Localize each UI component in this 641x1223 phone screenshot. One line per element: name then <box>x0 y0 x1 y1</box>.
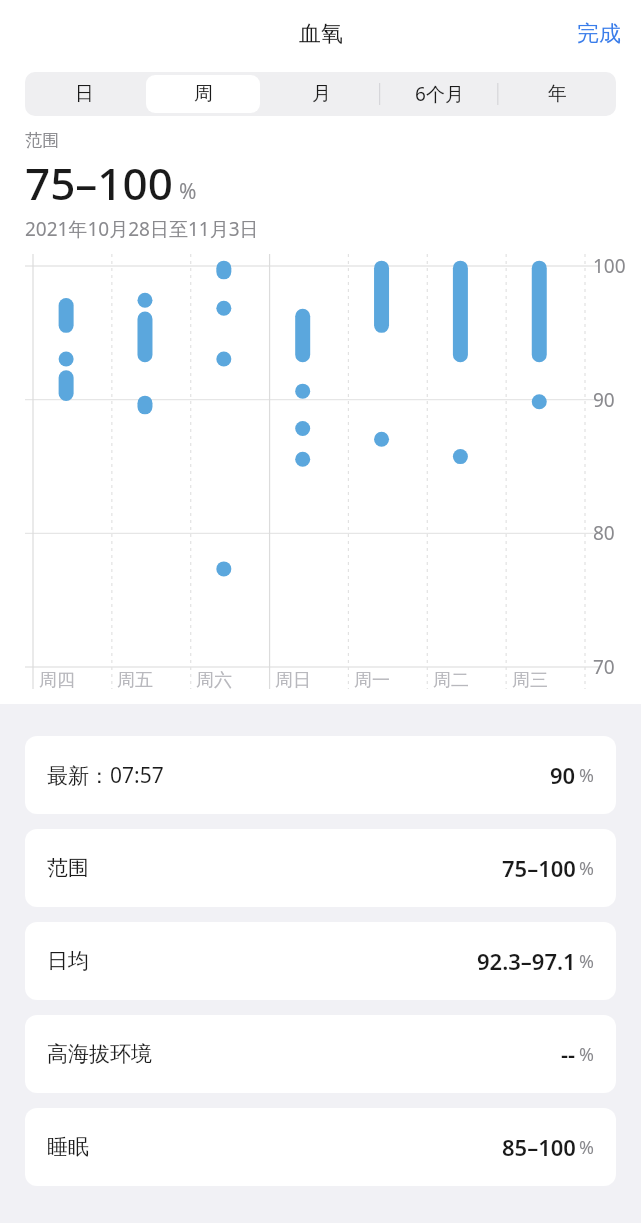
staticText: 90 <box>593 387 615 413</box>
staticText: 周五 <box>117 669 153 692</box>
staticText: 范围 <box>25 130 59 151</box>
staticText: 6个月 <box>415 81 464 107</box>
staticText: 最新：07:57 <box>47 761 164 790</box>
staticText: 周三 <box>512 669 548 692</box>
staticText: 睡眠 <box>47 1134 89 1160</box>
button[interactable]: 高海拔环境 <box>25 1015 616 1093</box>
button[interactable]: 最新：07:57 <box>25 736 616 814</box>
staticText: 月 <box>312 82 331 106</box>
staticText: % <box>179 177 197 206</box>
staticText: 周一 <box>354 669 390 692</box>
button[interactable]: 睡眠 <box>25 1108 616 1186</box>
button[interactable]: 6个月 <box>382 75 496 113</box>
staticText: 92.3–97.1 <box>477 946 576 976</box>
staticText: 2021年10月28日至11月3日 <box>25 216 259 242</box>
staticText: 75–100 <box>502 853 576 883</box>
button[interactable]: 月 <box>264 75 378 113</box>
staticText: 年 <box>548 82 567 106</box>
staticText: 周四 <box>39 669 75 692</box>
button[interactable]: 完成 <box>557 12 641 56</box>
staticText: 完成 <box>577 20 621 48</box>
staticText: 85–100 <box>502 1132 576 1162</box>
staticText: 75–100 <box>25 153 173 213</box>
staticText: 周六 <box>196 669 232 692</box>
staticText: 100 <box>593 253 626 279</box>
button[interactable]: 日均 <box>25 922 616 1000</box>
staticText: 周日 <box>275 669 311 692</box>
button[interactable]: 周 <box>146 75 260 113</box>
staticText: 80 <box>593 520 615 546</box>
staticText: 周 <box>194 82 213 106</box>
button[interactable]: 范围 <box>25 829 616 907</box>
staticText: 日 <box>75 82 94 106</box>
staticText: 日均 <box>47 948 89 974</box>
staticText: 70 <box>593 654 615 680</box>
staticText: % <box>579 763 594 788</box>
staticText: % <box>579 856 594 881</box>
staticText: 高海拔环境 <box>47 1041 152 1067</box>
button[interactable]: 年 <box>500 75 614 113</box>
staticText: % <box>579 1135 594 1160</box>
staticText: -- <box>561 1039 576 1069</box>
staticText: % <box>579 949 594 974</box>
staticText: 90 <box>550 760 576 790</box>
staticText: 周二 <box>433 669 469 692</box>
staticText: 血氧 <box>299 20 343 48</box>
button[interactable]: 日 <box>27 75 142 113</box>
staticText: % <box>579 1042 594 1067</box>
staticText: 范围 <box>47 855 89 881</box>
